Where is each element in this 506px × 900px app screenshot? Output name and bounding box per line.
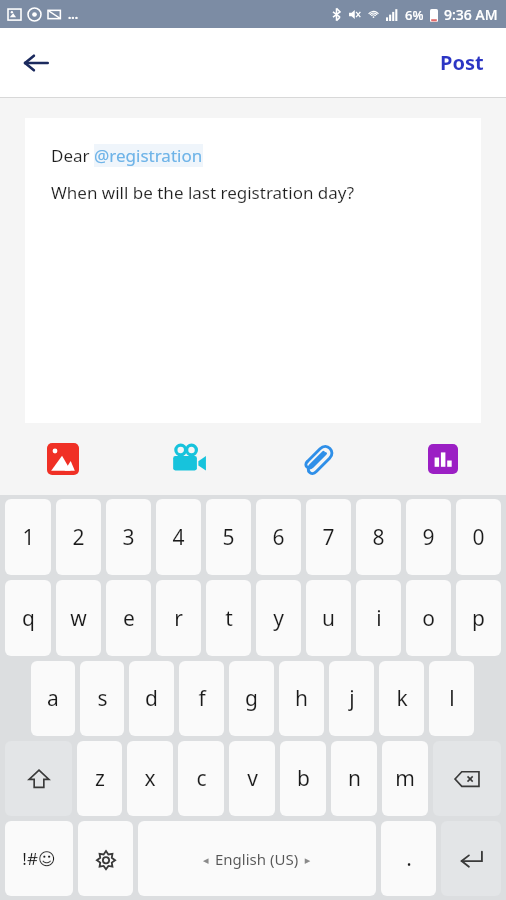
staticText: 4 (172, 523, 185, 552)
staticText: 6 (272, 523, 285, 552)
button[interactable]: b (280, 741, 326, 816)
staticText: English (US) (215, 849, 299, 869)
button[interactable]: 0 (456, 499, 501, 575)
staticText: p (472, 604, 485, 633)
staticText: g (245, 684, 258, 713)
staticText: !#☺ (22, 847, 56, 870)
staticText: r (174, 604, 183, 633)
staticText: 5 (222, 523, 235, 552)
button[interactable]: ◂ (138, 821, 376, 896)
button[interactable]: Add photo (0, 423, 126, 495)
button[interactable]: Settings (78, 821, 133, 896)
staticText: e (123, 604, 135, 633)
button[interactable]: Shift (5, 741, 72, 816)
button[interactable]: i (356, 580, 401, 656)
button[interactable]: e (106, 580, 151, 656)
button[interactable]: u (306, 580, 351, 656)
staticText: 6% (405, 6, 424, 24)
button[interactable]: k (379, 661, 424, 736)
button[interactable]: 9 (406, 499, 451, 575)
button[interactable]: j (329, 661, 374, 736)
staticText: l (449, 684, 455, 713)
staticText: f (198, 684, 206, 713)
staticText: u (322, 604, 335, 633)
button[interactable]: t (206, 580, 251, 656)
button[interactable]: v (229, 741, 275, 816)
button[interactable]: . (381, 821, 436, 896)
button[interactable]: q (5, 580, 51, 656)
staticText: z (95, 764, 105, 793)
button[interactable]: 1 (5, 499, 51, 575)
staticText: Post (440, 49, 484, 76)
button[interactable]: 8 (356, 499, 401, 575)
staticText: 0 (472, 523, 485, 552)
button[interactable]: Enter (441, 821, 501, 896)
staticText: m (395, 764, 415, 793)
button[interactable]: s (80, 661, 124, 736)
staticText: q (22, 604, 35, 633)
staticText: 9:36 AM (444, 5, 498, 24)
staticText: c (196, 764, 207, 793)
staticText: Dear (51, 144, 94, 167)
button[interactable]: l (429, 661, 474, 736)
staticText: 3 (122, 523, 135, 552)
button[interactable]: 4 (156, 499, 201, 575)
button[interactable]: 3 (106, 499, 151, 575)
staticText: t (225, 604, 233, 633)
staticText: a (47, 684, 59, 713)
button[interactable]: w (56, 580, 101, 656)
staticText: 2 (72, 523, 85, 552)
staticText: x (144, 764, 156, 793)
staticText: 8 (372, 523, 385, 552)
staticText: k (396, 684, 408, 713)
staticText: s (97, 684, 108, 713)
button[interactable]: Add poll (379, 423, 506, 495)
button[interactable]: Backspace (433, 741, 501, 816)
button[interactable]: Back (10, 37, 62, 89)
button[interactable]: c (178, 741, 224, 816)
staticText: ... (68, 6, 79, 22)
button[interactable]: 6 (256, 499, 301, 575)
staticText: o (422, 604, 435, 633)
button[interactable]: Post (430, 41, 494, 84)
button[interactable]: 2 (56, 499, 101, 575)
staticText: 9 (422, 523, 435, 552)
button[interactable]: r (156, 580, 201, 656)
staticText: v (247, 764, 258, 793)
staticText: d (145, 684, 158, 713)
staticText: @registration (94, 144, 203, 167)
staticText: h (295, 684, 308, 713)
button[interactable]: g (229, 661, 274, 736)
staticText: ▸ (299, 852, 311, 867)
button[interactable]: 7 (306, 499, 351, 575)
staticText: 1 (22, 523, 35, 552)
staticText: . (406, 844, 412, 873)
button[interactable]: 5 (206, 499, 251, 575)
button[interactable]: x (127, 741, 173, 816)
button[interactable]: f (179, 661, 224, 736)
button[interactable]: h (279, 661, 324, 736)
button[interactable]: a (31, 661, 75, 736)
staticText: n (348, 764, 361, 793)
button[interactable]: o (406, 580, 451, 656)
staticText: When will be the last registration day? (51, 181, 355, 204)
staticText: w (70, 604, 87, 633)
button[interactable]: Attach file (252, 423, 379, 495)
button[interactable]: n (331, 741, 377, 816)
staticText: y (273, 604, 284, 633)
button[interactable]: p (456, 580, 501, 656)
button[interactable]: d (129, 661, 174, 736)
staticText: b (297, 764, 310, 793)
button[interactable]: Add video (126, 423, 252, 495)
button[interactable]: z (77, 741, 122, 816)
staticText: j (349, 684, 355, 713)
staticText: 7 (322, 523, 335, 552)
button[interactable]: m (382, 741, 428, 816)
staticText: ◂ (203, 852, 215, 867)
button[interactable]: Dear (25, 118, 481, 423)
button[interactable]: y (256, 580, 301, 656)
button[interactable]: !#☺ (5, 821, 73, 896)
button[interactable]: @registration (94, 144, 203, 167)
staticText: i (376, 604, 382, 633)
